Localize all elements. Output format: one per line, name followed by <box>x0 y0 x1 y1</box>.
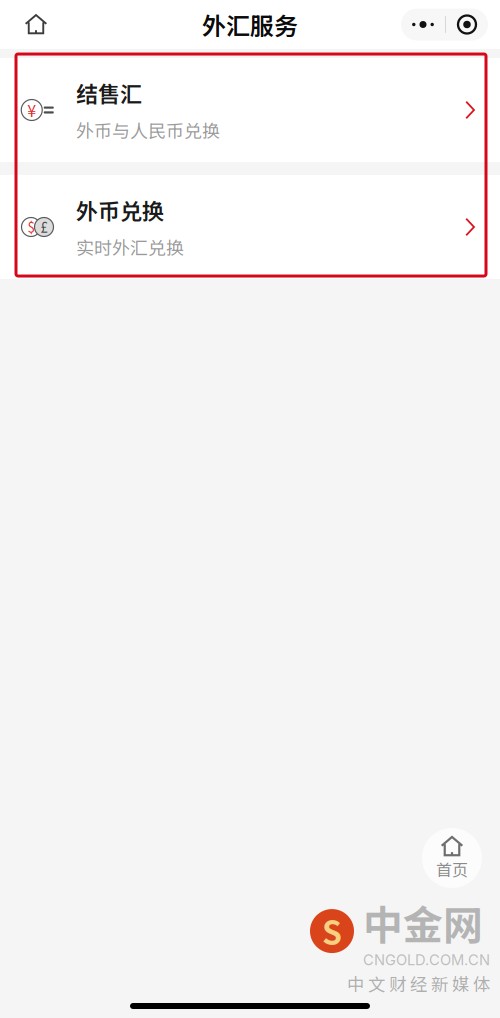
button[interactable]: More options <box>401 8 488 40</box>
staticText: 外汇服务 <box>202 7 298 42</box>
button[interactable]: Home <box>14 2 58 46</box>
staticText: ¥ <box>27 98 36 122</box>
staticText: £ <box>40 217 47 237</box>
button[interactable]: ¥ <box>0 58 500 162</box>
staticText: S <box>322 908 342 954</box>
button[interactable]: $ <box>0 175 500 279</box>
staticText: 中 文 财 经 新 媒 体 <box>347 971 490 996</box>
button[interactable]: Home <box>422 828 482 888</box>
staticText: 中金网 <box>363 893 483 951</box>
staticText: 外币兑换 <box>76 194 164 226</box>
staticText: 实时外汇兑换 <box>76 234 184 260</box>
staticText: 外币与人民币兑换 <box>76 117 220 143</box>
staticText: 首页 <box>436 857 468 881</box>
staticText: CNGOLD.COM.CN <box>363 951 490 969</box>
staticText: 结售汇 <box>76 77 142 109</box>
staticText: $ <box>27 217 34 237</box>
